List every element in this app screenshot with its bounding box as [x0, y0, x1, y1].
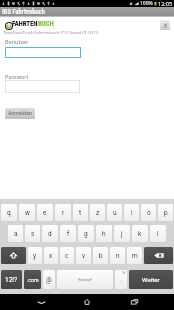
button[interactable]: z [90, 204, 105, 221]
button[interactable]: Back [26, 294, 56, 310]
button[interactable]: u [107, 204, 122, 221]
button[interactable]: Punctuation [115, 270, 127, 289]
button[interactable]: i [124, 204, 139, 221]
button[interactable]: v [76, 247, 91, 264]
staticText: Anmelden [8, 110, 33, 117]
staticText: TrackYourTruck Fahrtenbuch V1.0 Stand 01… [3, 30, 98, 36]
staticText: d [48, 230, 52, 238]
button[interactable]: k [132, 225, 148, 242]
button[interactable]: Info [160, 20, 170, 30]
staticText: n [116, 252, 120, 260]
staticText: 100% [140, 0, 153, 7]
staticText: BUCH [38, 20, 54, 28]
staticText: c [65, 252, 69, 260]
button[interactable] [5, 47, 81, 58]
button[interactable] [5, 80, 80, 93]
staticText: g [84, 230, 88, 238]
button[interactable]: g [78, 225, 94, 242]
button[interactable]: Anmelden [5, 108, 35, 119]
button[interactable]: c [60, 247, 74, 264]
button[interactable]: s [25, 225, 40, 242]
button[interactable]: Home [72, 294, 102, 310]
staticText: m [132, 252, 138, 260]
button[interactable]: r [55, 204, 71, 221]
staticText: q [7, 209, 11, 217]
staticText: @ [46, 276, 52, 284]
button[interactable]: f [60, 225, 76, 242]
button[interactable]: Weiter [129, 270, 173, 289]
staticText: z [96, 209, 100, 217]
button[interactable]: w [19, 204, 35, 221]
staticText: p [164, 209, 168, 217]
staticText: s [31, 230, 35, 238]
button[interactable]: .com [24, 270, 41, 289]
staticText: y [33, 252, 37, 260]
button[interactable]: @ [43, 270, 55, 289]
button[interactable]: h [96, 225, 112, 242]
button[interactable]: q [1, 204, 17, 221]
button[interactable]: l [150, 225, 166, 242]
button[interactable]: 12!? [1, 270, 22, 289]
staticText: b [99, 252, 103, 260]
staticText: !# [122, 270, 126, 275]
staticText: l [157, 230, 159, 238]
staticText: . [120, 276, 122, 284]
staticText: j [121, 230, 123, 238]
staticText: Weiter [142, 276, 160, 283]
button[interactable]: b [93, 247, 108, 264]
staticText: o [147, 209, 151, 217]
button[interactable]: t [73, 204, 88, 221]
button[interactable]: Shift [1, 247, 26, 264]
staticText: a [14, 230, 18, 238]
staticText: 12:05 [158, 0, 173, 7]
button[interactable] [57, 270, 113, 289]
button[interactable]: x [44, 247, 58, 264]
staticText: h [102, 230, 106, 238]
staticText: FAHRTEN [12, 20, 38, 28]
button[interactable]: e [37, 204, 53, 221]
button[interactable]: y [28, 247, 42, 264]
staticText: IBS Fahrtenbuch [2, 8, 45, 16]
staticText: w [25, 209, 30, 217]
button[interactable]: p [158, 204, 173, 221]
staticText: t [79, 209, 82, 217]
button[interactable]: n [110, 247, 125, 264]
staticText: i [131, 209, 133, 217]
button[interactable]: j [114, 225, 130, 242]
staticText: 12!? [5, 276, 18, 284]
staticText: r [62, 209, 65, 217]
button[interactable]: d [42, 225, 58, 242]
staticText: e [43, 209, 47, 217]
button[interactable]: m [127, 247, 142, 264]
staticText: x [49, 252, 53, 260]
button[interactable]: Backspace [144, 247, 173, 264]
button[interactable]: Recent apps [119, 294, 149, 310]
staticText: Passwort [5, 73, 29, 80]
staticText: Benutzer [5, 38, 29, 45]
staticText: k [138, 230, 142, 238]
staticText: u [113, 209, 117, 217]
staticText: f [67, 230, 70, 238]
button[interactable]: a [8, 225, 23, 242]
staticText: v [82, 252, 86, 260]
button[interactable]: o [141, 204, 156, 221]
staticText: .com [27, 277, 39, 283]
